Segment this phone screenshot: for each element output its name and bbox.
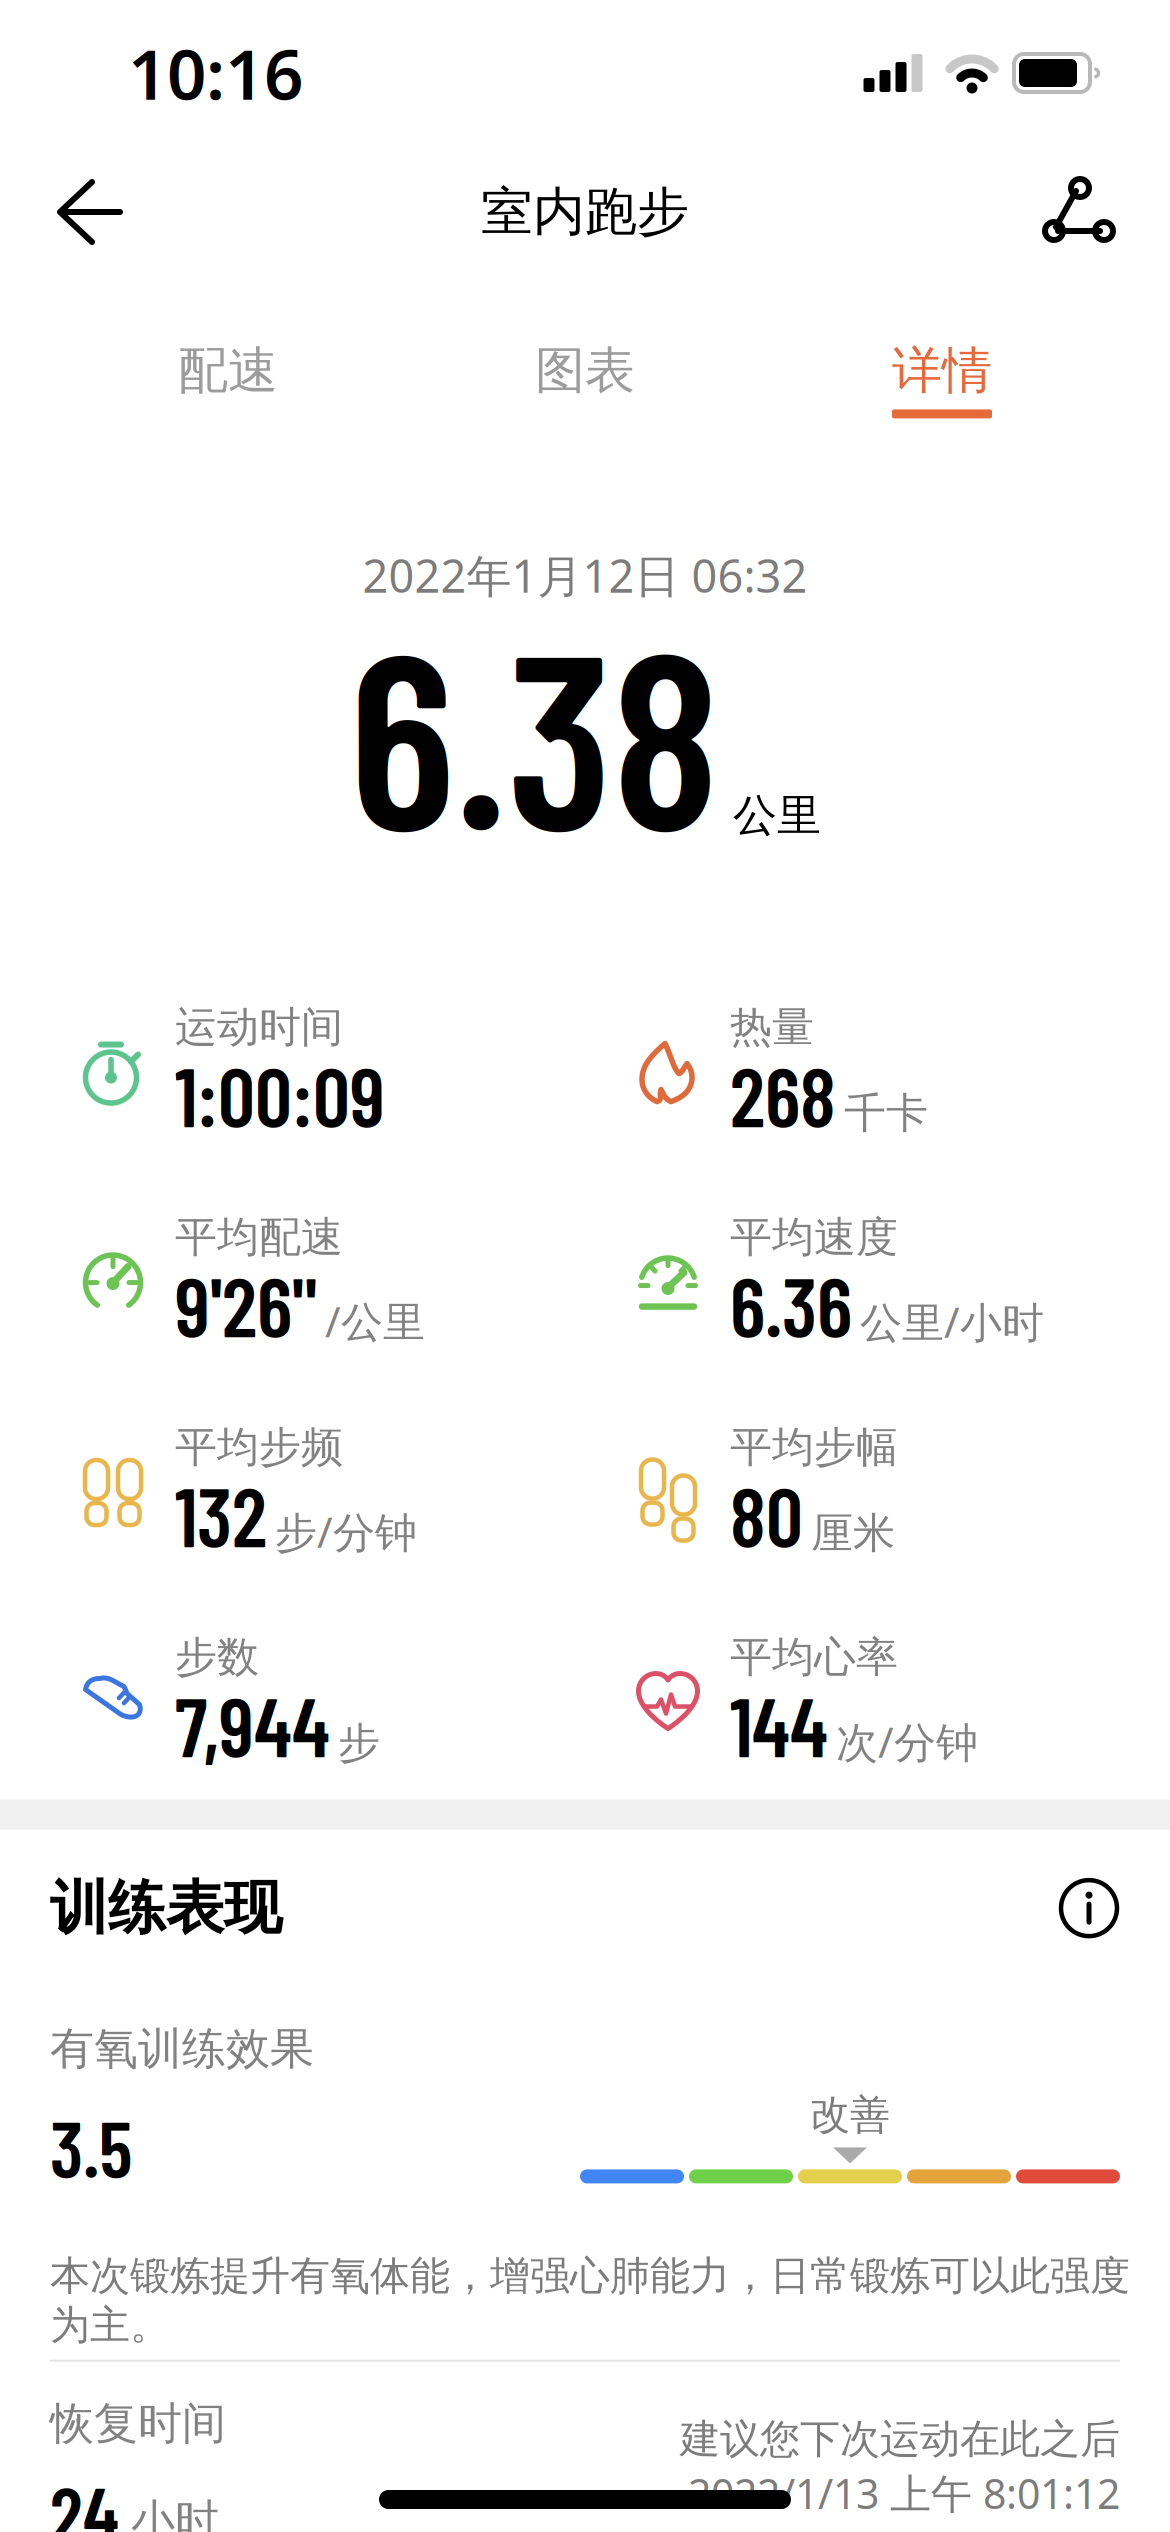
staticText: 7,944 <box>175 1675 330 1773</box>
staticText: 有氧训练效果 <box>50 2022 314 2076</box>
staticText: 平均速度 <box>730 1212 898 1263</box>
staticText: 次/分钟 <box>836 1713 978 1769</box>
staticText: 本次锻炼提升有氧体能，增强心肺能力，日常锻炼可以此强度 <box>50 2251 1130 2300</box>
staticText: 千卡 <box>844 1087 928 1139</box>
staticText: 步数 <box>175 1631 259 1683</box>
staticText: 图表 <box>535 340 635 401</box>
staticText: 运动时间 <box>175 1002 343 1053</box>
staticText: /公里 <box>325 1293 425 1349</box>
staticText: 建议您下次运动在此之后 <box>680 2415 1120 2464</box>
button[interactable]: Back <box>0 179 122 245</box>
staticText: 132 <box>175 1465 267 1563</box>
staticText: 平均心率 <box>730 1631 898 1683</box>
staticText: 厘米 <box>811 1507 895 1559</box>
staticText: 2022年1月12日 06:32 <box>362 545 807 605</box>
staticText: 268 <box>730 1045 836 1144</box>
staticText: 公里 <box>733 788 821 842</box>
staticText: 6.36 <box>730 1255 852 1353</box>
staticText: 平均步频 <box>175 1421 343 1473</box>
staticText: 80 <box>730 1465 803 1563</box>
button[interactable]: 详情 <box>763 340 1120 418</box>
staticText: 详情 <box>892 340 992 401</box>
staticText: 小时 <box>131 2494 219 2532</box>
staticText: 平均配速 <box>175 1212 343 1263</box>
button[interactable]: 配速 <box>49 340 406 418</box>
staticText: 24 <box>50 2466 119 2532</box>
button[interactable]: 图表 <box>406 340 763 418</box>
staticText: 步 <box>338 1717 380 1769</box>
staticText: 为主。 <box>50 2300 170 2350</box>
staticText: 公里/小时 <box>860 1294 1044 1349</box>
staticText: 1:00:09 <box>175 1045 385 1144</box>
staticText: 室内跑步 <box>481 180 689 244</box>
staticText: 9'26" <box>175 1255 317 1353</box>
staticText: 热量 <box>730 1002 814 1053</box>
staticText: 2022/1/13 上午 8:01:12 <box>688 2466 1120 2520</box>
button[interactable]: Share <box>1042 179 1170 245</box>
staticText: 10:16 <box>128 27 303 119</box>
button[interactable]: Info <box>1058 1877 1120 1939</box>
staticText: 3.5 <box>50 2100 132 2193</box>
staticText: 训练表现 <box>50 1872 282 1944</box>
staticText: 144 <box>730 1675 828 1773</box>
staticText: 6.38 <box>349 583 719 880</box>
staticText: 平均步幅 <box>730 1421 898 1473</box>
staticText: 改善 <box>810 2090 890 2139</box>
staticText: 恢复时间 <box>50 2397 226 2451</box>
staticText: 步/分钟 <box>275 1503 417 1559</box>
staticText: 配速 <box>178 340 278 401</box>
